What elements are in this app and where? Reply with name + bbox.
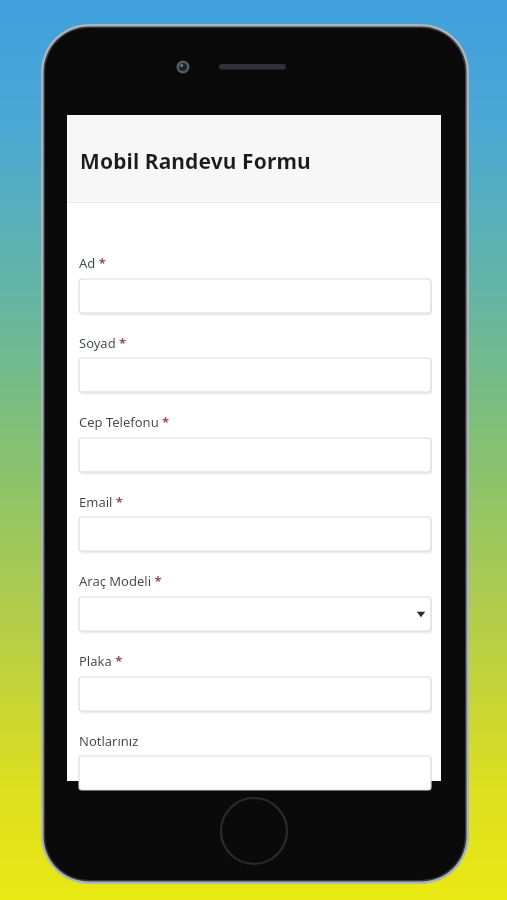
- staticText: Ad *: [79, 254, 106, 272]
- button[interactable]: Soyad: [79, 358, 431, 392]
- staticText: Email *: [79, 493, 123, 511]
- button[interactable]: Plaka: [79, 677, 431, 711]
- staticText: Notlarınız: [79, 732, 139, 750]
- button[interactable]: Email: [79, 517, 431, 551]
- button[interactable]: Ad: [79, 279, 431, 313]
- button[interactable]: Notlarınız: [79, 756, 431, 790]
- staticText: Mobil Randevu Formu: [80, 147, 311, 176]
- staticText: Araç Modeli *: [79, 572, 162, 590]
- button[interactable]: Cep Telefonu: [79, 438, 431, 472]
- staticText: Plaka *: [79, 652, 123, 670]
- staticText: Cep Telefonu *: [79, 413, 170, 431]
- staticText: Soyad *: [79, 334, 127, 352]
- button[interactable]: Araç Modeli: [79, 597, 431, 631]
- button[interactable]: Home: [221, 798, 287, 864]
